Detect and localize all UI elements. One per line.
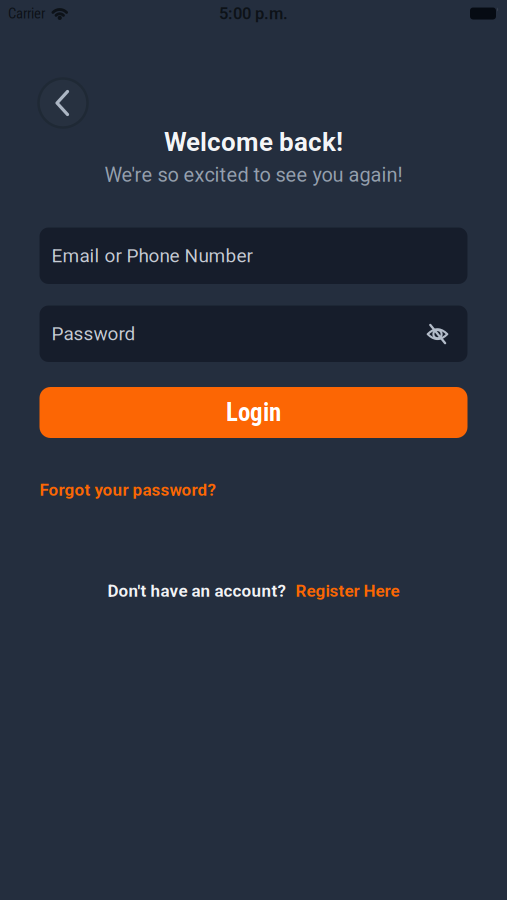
staticText: Password: [51, 323, 135, 345]
staticText: Carrier: [8, 5, 45, 22]
staticText: Register Here: [295, 581, 399, 601]
button[interactable]: Register Here: [295, 581, 399, 601]
button[interactable]: Password: [39, 305, 467, 362]
staticText: Email or Phone Number: [51, 245, 252, 267]
staticText: Don't have an account?: [107, 581, 285, 601]
button[interactable]: Show password: [425, 322, 449, 346]
staticText: 5:00 p.m.: [219, 4, 288, 23]
button[interactable]: Login: [39, 387, 467, 438]
staticText: Login: [226, 398, 281, 427]
button[interactable]: Back: [38, 78, 88, 128]
staticText: Forgot your password?: [39, 480, 215, 500]
button[interactable]: Forgot your password?: [39, 480, 215, 500]
staticText: Welcome back!: [164, 127, 343, 157]
button[interactable]: Email or Phone Number: [39, 227, 467, 284]
staticText: We're so excited to see you again!: [104, 163, 402, 187]
